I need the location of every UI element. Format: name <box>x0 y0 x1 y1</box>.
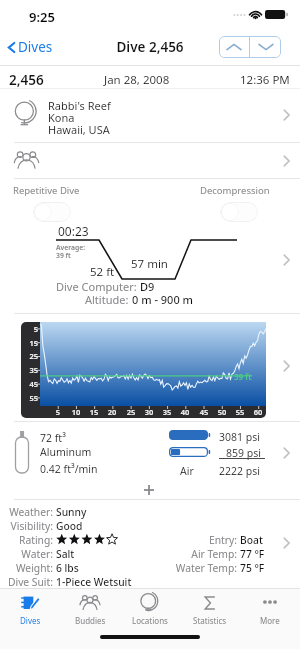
button[interactable]: Statistics <box>180 589 240 633</box>
staticText: Weather: <box>0 505 53 519</box>
staticText: 25 <box>20 351 38 361</box>
staticText: 52 ft <box>90 264 115 280</box>
staticText: 77 °F <box>240 547 265 561</box>
staticText: Water: <box>0 547 53 561</box>
staticText: Statistics <box>193 615 227 626</box>
staticText: Air <box>180 464 194 478</box>
staticText: Dives <box>20 615 41 626</box>
staticText: 10 <box>67 407 85 417</box>
staticText: 15 <box>20 338 38 348</box>
button[interactable] <box>0 143 300 178</box>
staticText: Average: <box>56 243 86 252</box>
button[interactable]: Weather: <box>0 500 300 587</box>
staticText: Salt <box>56 547 75 561</box>
staticText: 0 m - 900 m <box>132 292 193 307</box>
staticText: Sunny <box>56 505 87 519</box>
staticText: 55 <box>20 393 38 403</box>
staticText: 3081 psi <box>219 430 260 444</box>
staticText: 50 <box>213 407 231 417</box>
staticText: 57 min <box>131 256 168 272</box>
staticText: 12:36 PM <box>240 72 290 88</box>
staticText: Altitude: <box>85 292 129 307</box>
staticText: Dive Suit: <box>0 575 53 589</box>
staticText: 35 <box>158 407 176 417</box>
staticText: 6 lbs <box>56 561 79 575</box>
staticText: 35 <box>20 365 38 375</box>
button[interactable]: Rabbi's Reef <box>0 89 300 142</box>
button[interactable]: Previous dive <box>219 36 249 58</box>
staticText: 40 <box>176 407 194 417</box>
staticText: 15 <box>85 407 103 417</box>
button[interactable]: 5 <box>0 314 300 421</box>
staticText: Repetitive Dive <box>13 184 80 197</box>
button[interactable]: Add tank <box>144 485 154 495</box>
staticText: 1-Piece Wetsuit <box>56 575 132 589</box>
staticText: Weight: <box>0 561 53 575</box>
staticText: Decompression <box>200 184 270 197</box>
button[interactable]: Locations <box>120 589 180 633</box>
staticText: 45 <box>195 407 213 417</box>
staticText: 60 <box>249 407 267 417</box>
button[interactable]: 72 ft³ <box>0 422 300 499</box>
staticText: 45 <box>20 379 38 389</box>
staticText: 2,456 <box>9 71 44 89</box>
staticText: Visibility: <box>0 519 53 533</box>
staticText: Good <box>56 519 83 533</box>
staticText: Water Temp: <box>120 561 237 575</box>
staticText: 25 <box>122 407 140 417</box>
staticText: Rating: <box>0 533 53 547</box>
staticText: 20 <box>103 407 121 417</box>
staticText: 30 <box>140 407 158 417</box>
staticText: 75 °F <box>240 561 265 575</box>
button[interactable]: Dives <box>6 36 53 58</box>
staticText: More <box>260 615 280 626</box>
button[interactable] <box>33 202 71 222</box>
staticText: Locations <box>132 615 168 626</box>
staticText: Dive 2,456 <box>0 38 300 56</box>
staticText: 5 <box>49 407 67 417</box>
staticText: Aluminum <box>40 445 92 459</box>
staticText: 5 <box>20 324 38 334</box>
staticText: 0.42 ft³/min <box>40 462 98 476</box>
staticText: 39 ft <box>56 251 71 260</box>
staticText: Rabbi's Reef <box>48 98 111 113</box>
button[interactable]: Buddies <box>60 589 120 633</box>
staticText: 9:25 <box>29 8 55 26</box>
staticText: Boat <box>240 533 263 547</box>
staticText: D9 <box>140 279 155 294</box>
staticText: Dive Computer: <box>56 279 137 294</box>
staticText: 39 ft <box>234 371 252 382</box>
staticText: 55 <box>231 407 249 417</box>
staticText: Buddies <box>75 615 106 626</box>
staticText: Air Temp: <box>120 547 237 561</box>
staticText: Kona <box>48 110 75 125</box>
staticText: Jan 28, 2008 <box>104 72 170 88</box>
staticText: Dives <box>18 38 53 56</box>
staticText: 72 ft³ <box>40 431 66 445</box>
button[interactable]: Dives <box>0 589 60 633</box>
staticText: 00:23 <box>58 223 89 239</box>
staticText: Hawaii, USA <box>48 122 110 137</box>
button[interactable] <box>220 202 258 222</box>
button[interactable]: More <box>240 589 300 633</box>
staticText: 2222 psi <box>219 464 260 478</box>
staticText: Entry: <box>120 533 237 547</box>
button[interactable]: 00:23 <box>0 224 300 313</box>
staticText: 859 psi <box>226 446 261 460</box>
button[interactable]: Next dive <box>250 36 281 58</box>
